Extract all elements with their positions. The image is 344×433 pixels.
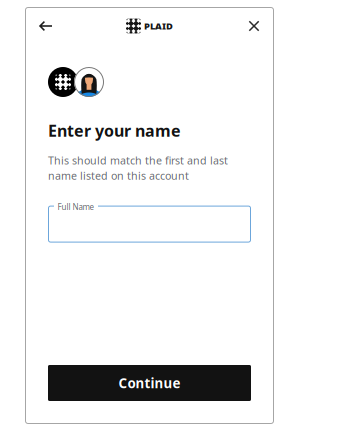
staticText: Continue — [118, 374, 180, 392]
button[interactable]: Continue — [48, 365, 251, 401]
staticText: Enter your name — [48, 120, 181, 141]
staticText: Full Name — [57, 202, 94, 212]
button[interactable]: Close — [239, 11, 269, 41]
staticText: name listed on this account — [48, 168, 189, 183]
staticText: This should match the first and last — [48, 153, 228, 167]
staticText: PLAID — [144, 20, 173, 32]
button[interactable]: Back — [31, 11, 61, 41]
